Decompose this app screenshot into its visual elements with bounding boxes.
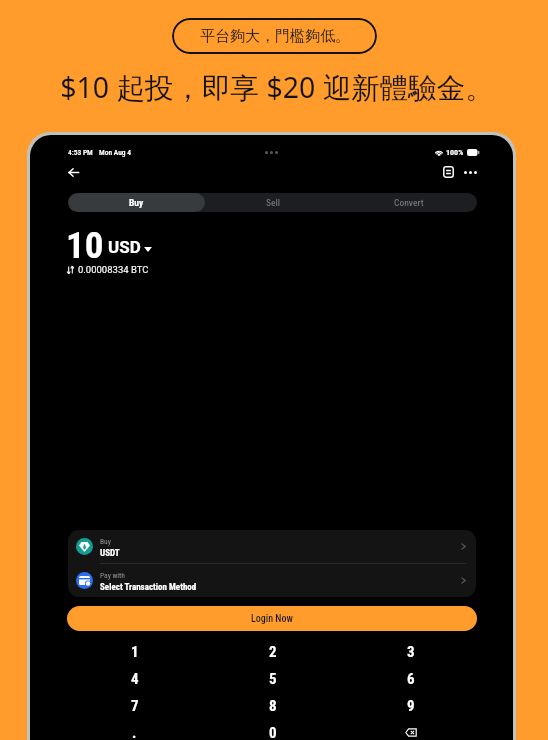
staticText: Select Transaction Method (100, 582, 197, 593)
staticText: . (132, 724, 137, 740)
button[interactable]: 4 (65, 665, 204, 692)
button[interactable]: 9 (342, 692, 480, 719)
button[interactable]: 3 (342, 638, 480, 665)
button[interactable]: 2 (204, 638, 342, 665)
staticText: 5 (269, 670, 277, 688)
button[interactable]: Buy (68, 193, 205, 212)
button[interactable]: Sell (205, 193, 341, 212)
staticText: Buy (100, 537, 111, 546)
staticText: Sell (266, 197, 281, 208)
staticText: 7 (131, 697, 139, 715)
staticText: 100% (446, 148, 464, 157)
button[interactable]: 5 (204, 665, 342, 692)
button[interactable]: 0 (204, 719, 342, 740)
staticText: 3 (407, 643, 415, 661)
button[interactable]: Back (63, 162, 83, 182)
button[interactable]: Orders (439, 163, 457, 181)
button[interactable]: 8 (204, 692, 342, 719)
staticText: 10 (66, 224, 104, 258)
staticText: 6 (407, 670, 415, 688)
staticText: Mon Aug 4 (99, 148, 132, 157)
staticText: 9 (407, 697, 415, 715)
staticText: Pay with (100, 571, 125, 580)
staticText: Convert (394, 197, 424, 208)
staticText: 0.00008334 BTC (78, 264, 149, 275)
staticText: Buy (129, 197, 144, 208)
button[interactable]: More options (461, 163, 479, 181)
staticText: 平台夠大，門檻夠低。 (200, 27, 350, 46)
button[interactable]: Backspace (342, 719, 480, 740)
button[interactable]: . (65, 719, 204, 740)
button[interactable]: Pay with (68, 564, 476, 597)
button[interactable]: 6 (342, 665, 480, 692)
staticText: Login Now (251, 613, 293, 625)
button[interactable]: Convert (341, 193, 477, 212)
staticText: USD (108, 237, 141, 257)
other: Backspace (405, 728, 417, 737)
staticText: $10 起投，即享 $20 迎新體驗金。 (60, 68, 494, 107)
staticText: 8 (269, 697, 277, 715)
button[interactable]: 平台夠大，門檻夠低。 (172, 18, 377, 54)
staticText: USDT (100, 548, 120, 559)
staticText: 4:53 PM (68, 148, 93, 157)
button[interactable]: Login Now (67, 606, 477, 631)
staticText: 2 (269, 643, 277, 661)
button[interactable]: 7 (65, 692, 204, 719)
staticText: 0 (269, 724, 277, 740)
button[interactable]: 1 (65, 638, 204, 665)
staticText: 1 (131, 643, 139, 661)
staticText: 4 (131, 670, 139, 688)
button[interactable]: Buy (68, 530, 476, 563)
button[interactable]: USD (108, 237, 152, 257)
